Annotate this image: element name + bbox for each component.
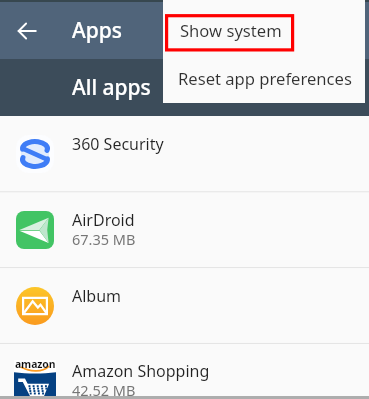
button[interactable]: Back — [6, 10, 48, 52]
staticText: All apps — [72, 73, 151, 102]
button[interactable]: amazon — [0, 343, 369, 399]
staticText: 360 Security — [72, 133, 164, 155]
staticText: Reset app preferences — [178, 67, 352, 90]
staticText: AirDroid — [72, 209, 135, 231]
staticText: Album — [72, 285, 122, 307]
button[interactable]: 360 Security — [0, 116, 369, 192]
staticText: amazon — [15, 357, 56, 371]
button[interactable]: Album — [0, 268, 369, 344]
staticText: 67.35 MB — [72, 229, 136, 249]
button[interactable]: Reset app preferences — [163, 61, 365, 95]
staticText: Show system — [180, 19, 282, 42]
button[interactable]: Show system — [163, 13, 365, 47]
staticText: Amazon Shopping — [72, 360, 210, 382]
staticText: 42.52 MB — [72, 380, 136, 399]
staticText: Apps — [72, 16, 123, 45]
button[interactable]: AirDroid — [0, 192, 369, 268]
